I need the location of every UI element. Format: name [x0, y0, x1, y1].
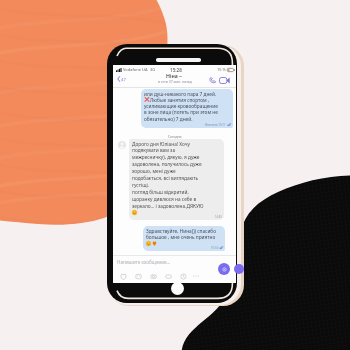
- staticText: 15:28: [170, 67, 182, 73]
- button[interactable]: Record voice message: [218, 263, 230, 275]
- staticText: Сегодня: [168, 134, 182, 139]
- staticText: в сети 37 мин. назад: [158, 79, 192, 84]
- button[interactable]: Camera: [150, 273, 157, 280]
- button[interactable]: Stickers: [120, 273, 127, 280]
- button[interactable]: History: [180, 273, 187, 280]
- button[interactable]: Emoji: [135, 273, 142, 280]
- staticText: Здравствуйте, Нина))) спасибо большое , …: [146, 228, 217, 241]
- button[interactable]: Back: [116, 75, 127, 83]
- staticText: Дорого дня Юліана! Хочу подякувати вам з…: [132, 141, 204, 210]
- staticText: усиливающие кровообращение в зоне лица (…: [144, 103, 218, 123]
- button[interactable]: или душ-никакого пара 7 дней.: [141, 89, 233, 128]
- staticText: 3G: [150, 67, 156, 72]
- staticText: 15 %: [217, 67, 226, 72]
- button[interactable]: Дорого дня Юліана! Хочу подякувати вам з…: [129, 139, 224, 220]
- staticText: или душ-никакого пара 7 дней.: [144, 91, 217, 97]
- button[interactable]: GIF: [165, 273, 172, 280]
- button[interactable]: More options: [192, 272, 200, 280]
- staticText: 14:55: [215, 215, 222, 219]
- staticText: Vodafone UA: [123, 67, 148, 72]
- staticText: Напишите сообщение...: [117, 259, 171, 265]
- staticText: 15:14: [211, 246, 218, 250]
- button[interactable]: Video call: [218, 74, 230, 86]
- staticText: Ніна ~: [166, 72, 183, 79]
- staticText: 47: [121, 76, 126, 82]
- button[interactable]: Voice call: [207, 74, 218, 85]
- staticText: ❌: [144, 97, 150, 103]
- staticText: Изменено 15:11: [205, 123, 226, 127]
- button[interactable]: Здравствуйте, Нина))) спасибо большое , …: [143, 226, 225, 251]
- staticText: Любые занятия спортом ,: [150, 97, 210, 103]
